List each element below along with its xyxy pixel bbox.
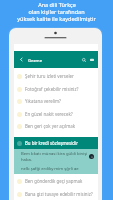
staticText: nelb şafği erdiky mim şğrli ae bbox=[21, 166, 79, 172]
button[interactable]: Şehir turu izleti verseler alabilirim? bbox=[14, 70, 98, 82]
button[interactable]: En güzel nakit verecek? bbox=[14, 108, 98, 120]
button[interactable]: Ben gönderdik geçi yapmak istiyorum bbox=[14, 175, 98, 187]
staticText: Fotoğraf çekebilir misiniz? bbox=[25, 86, 79, 92]
staticText: Ana dili Türkçe bbox=[38, 1, 76, 8]
staticText: Bu bir kredi sözleşmesidir bbox=[25, 140, 78, 146]
button[interactable]: Back bbox=[14, 51, 98, 68]
button[interactable]: Back bbox=[14, 51, 28, 68]
button[interactable]: Search bbox=[80, 51, 87, 68]
button[interactable]: Fotoğraf çekebilir misiniz? bbox=[14, 83, 98, 95]
staticText: haba. bbox=[21, 157, 32, 163]
staticText: Bana gizi tuvaye edebilir misiniz? bbox=[25, 191, 93, 197]
button[interactable]: Yıkatana verelim? bbox=[14, 95, 98, 107]
button[interactable]: Ben geri çok yer açılmak oluyorum bbox=[14, 120, 98, 132]
staticText: Bem bkatı münasi kira güldi binişi bbox=[21, 151, 88, 157]
staticText: En güzel nakit verecek? bbox=[25, 111, 73, 117]
staticText: Ben gönderdik geçi yapmak istiyorum bbox=[25, 178, 95, 184]
staticText: Yıkatana verelim? bbox=[25, 98, 61, 104]
staticText: Ben geri çok yer açılmak oluyorum bbox=[25, 123, 95, 129]
staticText: Gezme bbox=[28, 57, 43, 63]
staticText: olan kişiler tarafından bbox=[28, 8, 85, 15]
button[interactable]: Messages bbox=[87, 51, 96, 68]
button[interactable]: Bem bkatı münasi kira güldi binişi bbox=[14, 149, 98, 174]
button[interactable]: Bu bir kredi sözleşmesidir bbox=[14, 137, 98, 149]
staticText: yüksek kalite ile kaydedilmiştir bbox=[17, 15, 96, 22]
button[interactable]: Bana gizi tuvaye edebilir misiniz? bbox=[14, 188, 98, 200]
staticText: Şehir turu izleti verseler alabilirim? bbox=[25, 73, 95, 79]
button[interactable]: Play audio bbox=[89, 154, 94, 159]
